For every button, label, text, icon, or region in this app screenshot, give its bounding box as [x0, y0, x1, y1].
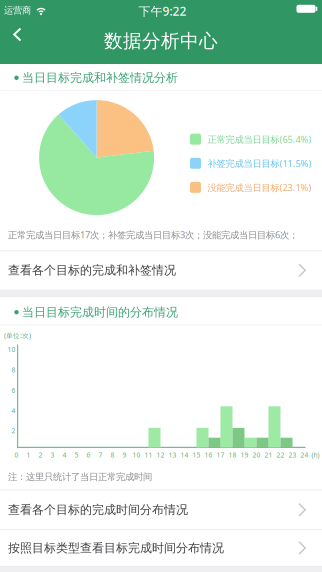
staticText: 5	[74, 450, 78, 459]
staticText: 4	[62, 450, 66, 459]
staticText: 数据分析中心	[104, 29, 218, 52]
staticText: 11	[144, 450, 152, 459]
staticText: 按照目标类型查看目标完成时间分布情况	[8, 541, 224, 555]
staticText: 下午9:22	[138, 3, 186, 19]
staticText: 查看各个目标的完成和补签情况	[8, 263, 176, 278]
staticText: 1	[26, 450, 30, 459]
staticText: 2	[11, 426, 15, 435]
button[interactable]: Back	[0, 14, 34, 54]
staticText: 注：这里只统计了当日正常完成时间	[8, 471, 152, 483]
staticText: 13	[168, 450, 176, 459]
staticText: 8	[11, 366, 15, 374]
staticText: (单位:次)	[4, 331, 31, 340]
staticText: 0	[14, 450, 18, 459]
staticText: 16	[204, 450, 212, 459]
staticText: 当日目标完成时间的分布情况	[22, 305, 178, 319]
staticText: 查看各个目标的完成时间分布情况	[8, 502, 188, 517]
staticText: (h)	[311, 450, 319, 459]
staticText: 15	[192, 450, 200, 459]
staticText: 运营商	[4, 5, 31, 16]
button[interactable]: 查看各个目标的完成和补签情况	[0, 251, 322, 289]
staticText: 18	[228, 450, 236, 459]
staticText: 2	[38, 450, 42, 459]
staticText: 4	[11, 406, 15, 415]
staticText: 12	[156, 450, 164, 459]
staticText: 3	[50, 450, 54, 459]
staticText: 7	[98, 450, 102, 459]
button[interactable]: 查看各个目标的完成时间分布情况	[0, 490, 322, 529]
staticText: 6	[86, 450, 90, 459]
staticText: 补签完成当日目标(11.5%)	[207, 157, 311, 169]
staticText: 9	[122, 450, 126, 459]
staticText: 10	[7, 345, 15, 354]
staticText: 17	[216, 450, 224, 459]
staticText: 24	[300, 450, 308, 459]
staticText: 14	[180, 450, 188, 459]
staticText: 19	[240, 450, 248, 459]
staticText: 21	[264, 450, 272, 459]
staticText: 8	[110, 450, 114, 459]
staticText: 20	[252, 450, 260, 459]
staticText: 22	[276, 450, 284, 459]
staticText: 正常完成当日目标(65.4%)	[207, 133, 311, 145]
staticText: 10	[132, 450, 140, 459]
staticText: 23	[288, 450, 296, 459]
staticText: 正常完成当日目标17次；补签完成当日目标3次；没能完成当日目标6次；	[8, 228, 298, 241]
staticText: 没能完成当日目标(23.1%)	[207, 181, 311, 194]
staticText: 当日目标完成和补签情况分析	[22, 70, 178, 85]
staticText: 6	[11, 386, 15, 395]
button[interactable]: 按照目标类型查看目标完成时间分布情况	[0, 530, 322, 566]
